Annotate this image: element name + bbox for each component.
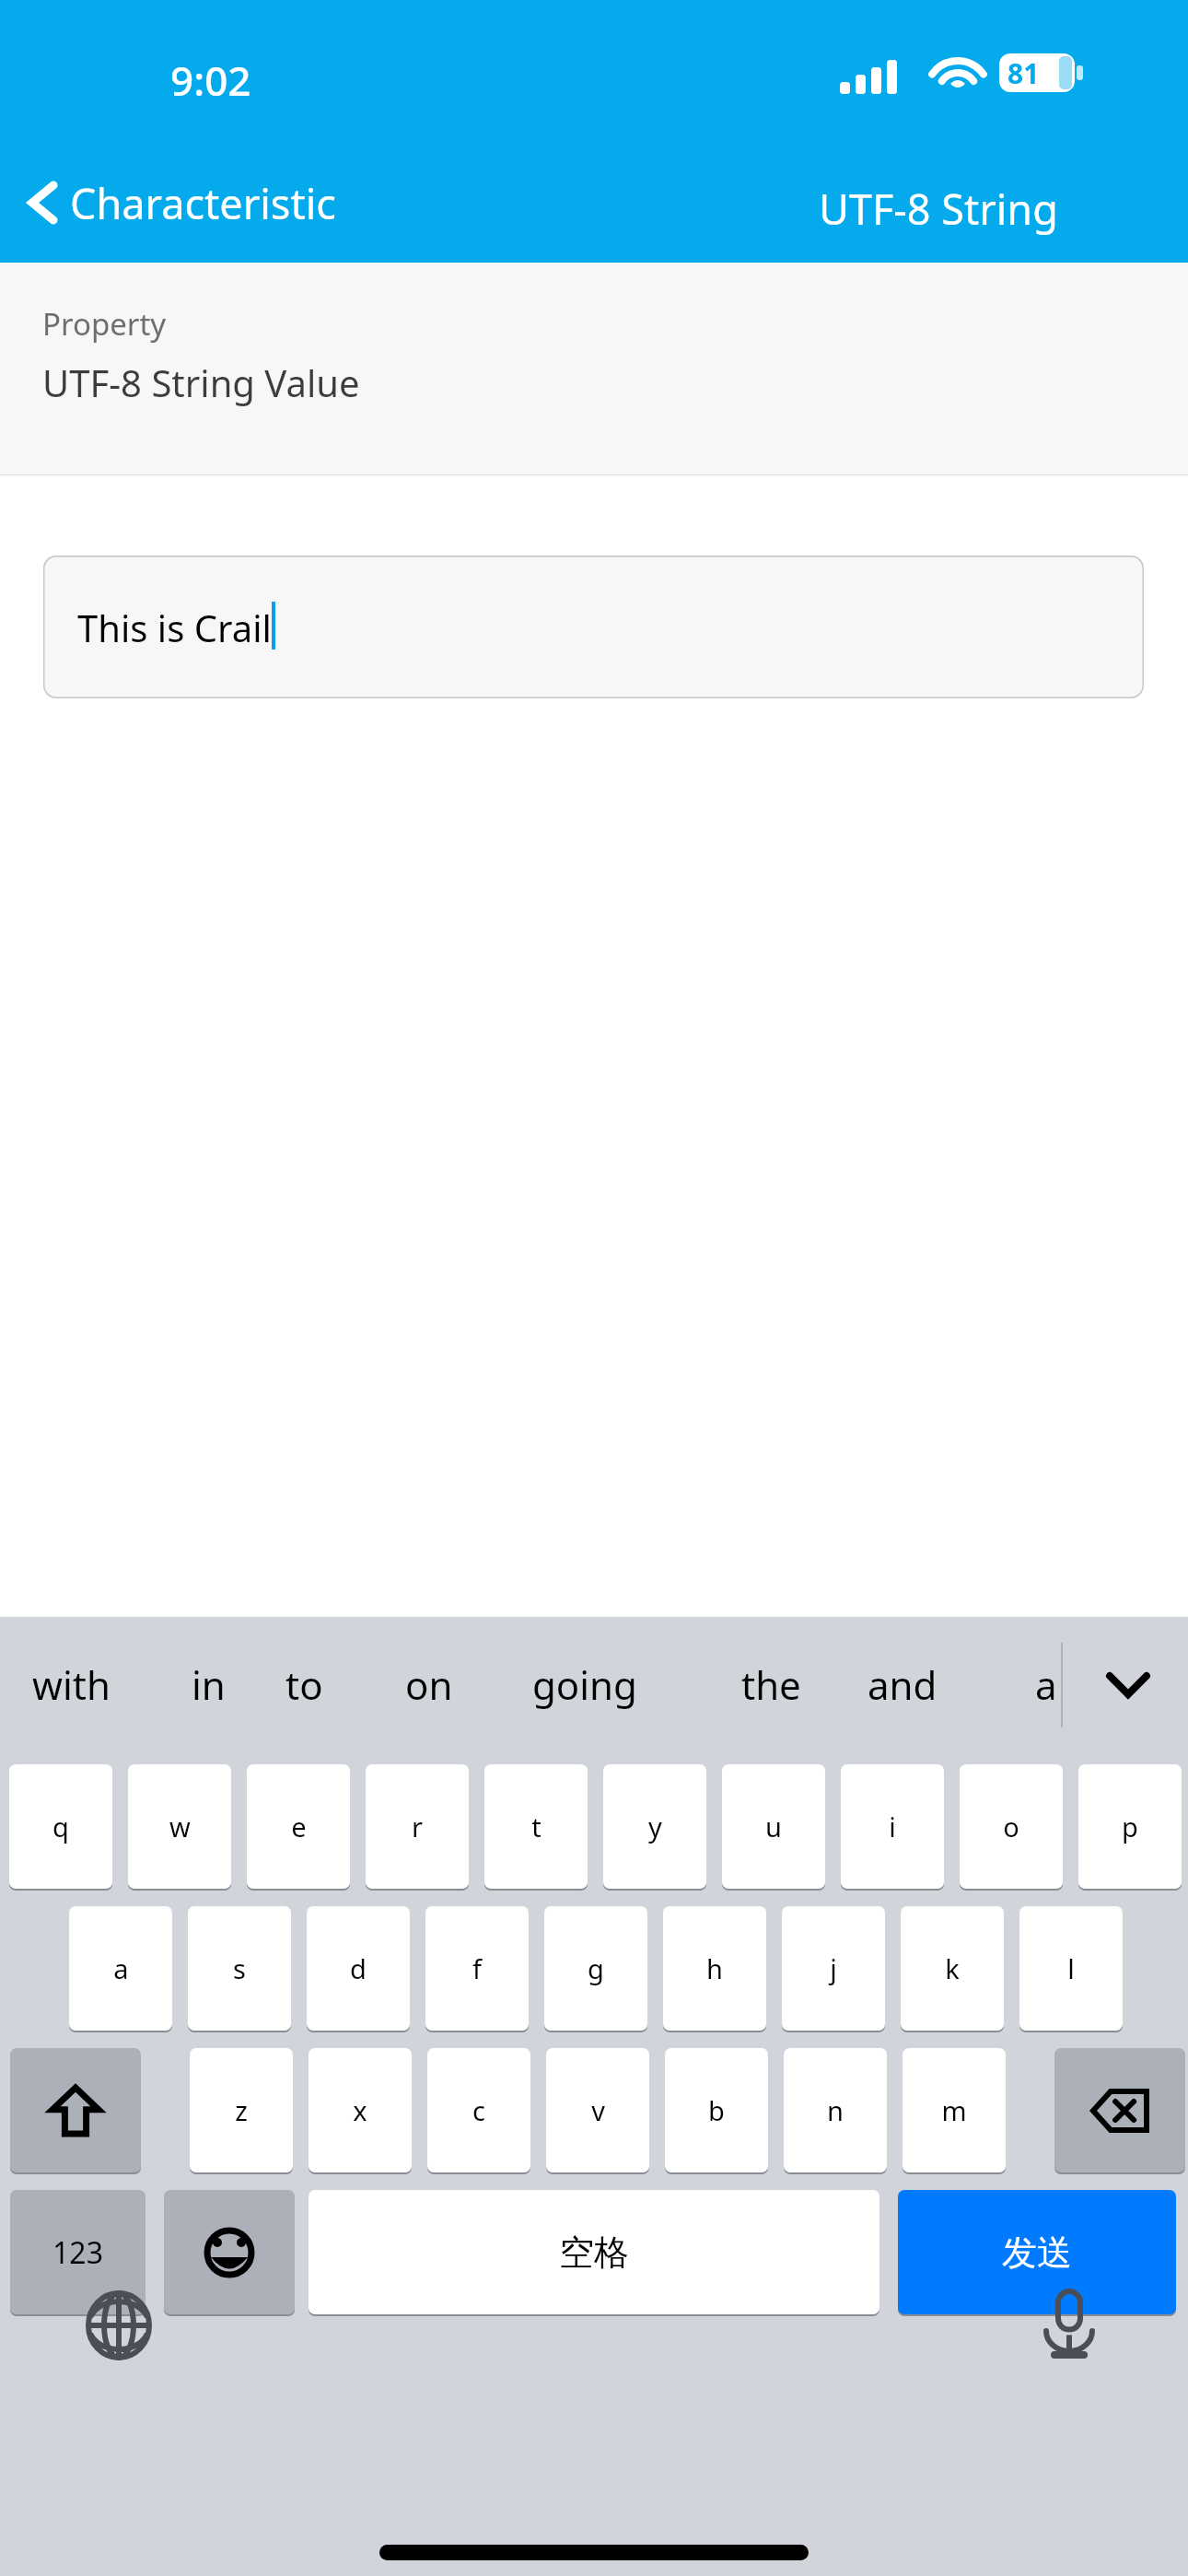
staticText: This is Crail bbox=[77, 603, 272, 652]
staticText: k bbox=[945, 1950, 960, 1986]
button[interactable]: w bbox=[128, 1764, 231, 1891]
staticText: m bbox=[941, 2092, 967, 2128]
staticText: z bbox=[235, 2092, 248, 2128]
staticText: x bbox=[353, 2092, 367, 2128]
button[interactable]: the bbox=[741, 1647, 801, 1721]
staticText: h bbox=[706, 1950, 723, 1986]
button[interactable]: t bbox=[484, 1764, 588, 1891]
button[interactable]: k bbox=[901, 1906, 1004, 2032]
button[interactable]: Hide keyboard bbox=[1089, 1661, 1167, 1709]
button[interactable]: with bbox=[32, 1647, 111, 1721]
button[interactable]: going bbox=[532, 1647, 637, 1721]
button[interactable]: i bbox=[841, 1764, 944, 1891]
button[interactable]: j bbox=[782, 1906, 885, 2032]
staticText: w bbox=[169, 1809, 191, 1844]
staticText: 空格 bbox=[559, 2231, 629, 2275]
staticText: c bbox=[472, 2092, 485, 2128]
button[interactable]: e bbox=[247, 1764, 350, 1891]
staticText: g bbox=[588, 1950, 604, 1986]
button[interactable]: o bbox=[960, 1764, 1063, 1891]
button[interactable]: b bbox=[665, 2048, 768, 2174]
staticText: r bbox=[412, 1809, 423, 1844]
staticText: Characteristic bbox=[70, 175, 336, 231]
staticText: f bbox=[472, 1950, 482, 1986]
button[interactable]: Delete bbox=[1054, 2048, 1185, 2174]
staticText: and bbox=[868, 1658, 938, 1711]
button[interactable]: r bbox=[366, 1764, 469, 1891]
staticText: UTF-8 String Value bbox=[42, 357, 360, 407]
staticText: to bbox=[285, 1658, 323, 1711]
button[interactable]: f bbox=[425, 1906, 529, 2032]
staticText: going bbox=[532, 1658, 637, 1711]
staticText: n bbox=[827, 2092, 844, 2128]
button[interactable]: y bbox=[603, 1764, 706, 1891]
button[interactable]: p bbox=[1078, 1764, 1182, 1891]
staticText: UTF-8 String bbox=[819, 181, 1058, 237]
button[interactable]: c bbox=[427, 2048, 530, 2174]
button[interactable]: Shift bbox=[10, 2048, 141, 2174]
staticText: p bbox=[1122, 1809, 1138, 1844]
button[interactable]: Dictation bbox=[1031, 2288, 1107, 2363]
staticText: in bbox=[192, 1658, 226, 1711]
button[interactable]: on bbox=[405, 1647, 453, 1721]
button[interactable]: d bbox=[307, 1906, 410, 2032]
staticText: 9:02 bbox=[170, 53, 251, 108]
staticText: v bbox=[591, 2092, 605, 2128]
staticText: e bbox=[291, 1809, 307, 1844]
button[interactable]: m bbox=[903, 2048, 1006, 2174]
staticText: l bbox=[1067, 1950, 1075, 1986]
button[interactable]: u bbox=[722, 1764, 825, 1891]
button[interactable]: to bbox=[285, 1647, 323, 1721]
button[interactable]: q bbox=[9, 1764, 112, 1891]
staticText: 发送 bbox=[1002, 2231, 1072, 2275]
staticText: a bbox=[1035, 1658, 1057, 1711]
staticText: j bbox=[830, 1950, 837, 1986]
button[interactable]: h bbox=[663, 1906, 766, 2032]
button[interactable]: 发送 bbox=[898, 2190, 1176, 2316]
staticText: y bbox=[648, 1809, 662, 1844]
button[interactable]: Emoji bbox=[164, 2190, 295, 2316]
button[interactable]: n bbox=[784, 2048, 887, 2174]
staticText: s bbox=[233, 1950, 246, 1986]
staticText: i bbox=[889, 1809, 896, 1844]
staticText: u bbox=[765, 1809, 782, 1844]
staticText: with bbox=[32, 1658, 111, 1711]
staticText: q bbox=[52, 1809, 69, 1844]
staticText: 123 bbox=[52, 2232, 103, 2273]
button[interactable]: in bbox=[192, 1647, 226, 1721]
staticText: t bbox=[531, 1809, 542, 1844]
staticText: Property bbox=[42, 303, 167, 345]
button[interactable]: 123 bbox=[10, 2190, 146, 2316]
staticText: o bbox=[1003, 1809, 1019, 1844]
staticText: a bbox=[113, 1950, 129, 1986]
button[interactable]: Characteristic bbox=[28, 166, 336, 240]
staticText: b bbox=[708, 2092, 725, 2128]
staticText: on bbox=[405, 1658, 453, 1711]
button[interactable]: a bbox=[69, 1906, 172, 2032]
button[interactable]: and bbox=[868, 1647, 938, 1721]
button[interactable]: x bbox=[309, 2048, 412, 2174]
staticText: 81 bbox=[1007, 54, 1040, 92]
button[interactable]: Change keyboard bbox=[81, 2288, 157, 2363]
button[interactable]: a bbox=[1035, 1647, 1057, 1721]
button[interactable]: s bbox=[188, 1906, 291, 2032]
button[interactable]: z bbox=[190, 2048, 293, 2174]
staticText: the bbox=[741, 1658, 801, 1711]
button[interactable]: This is Crail bbox=[43, 556, 1144, 698]
button[interactable]: g bbox=[544, 1906, 647, 2032]
staticText: d bbox=[350, 1950, 367, 1986]
button[interactable]: 空格 bbox=[309, 2190, 879, 2316]
button[interactable]: v bbox=[546, 2048, 649, 2174]
button[interactable]: l bbox=[1019, 1906, 1123, 2032]
